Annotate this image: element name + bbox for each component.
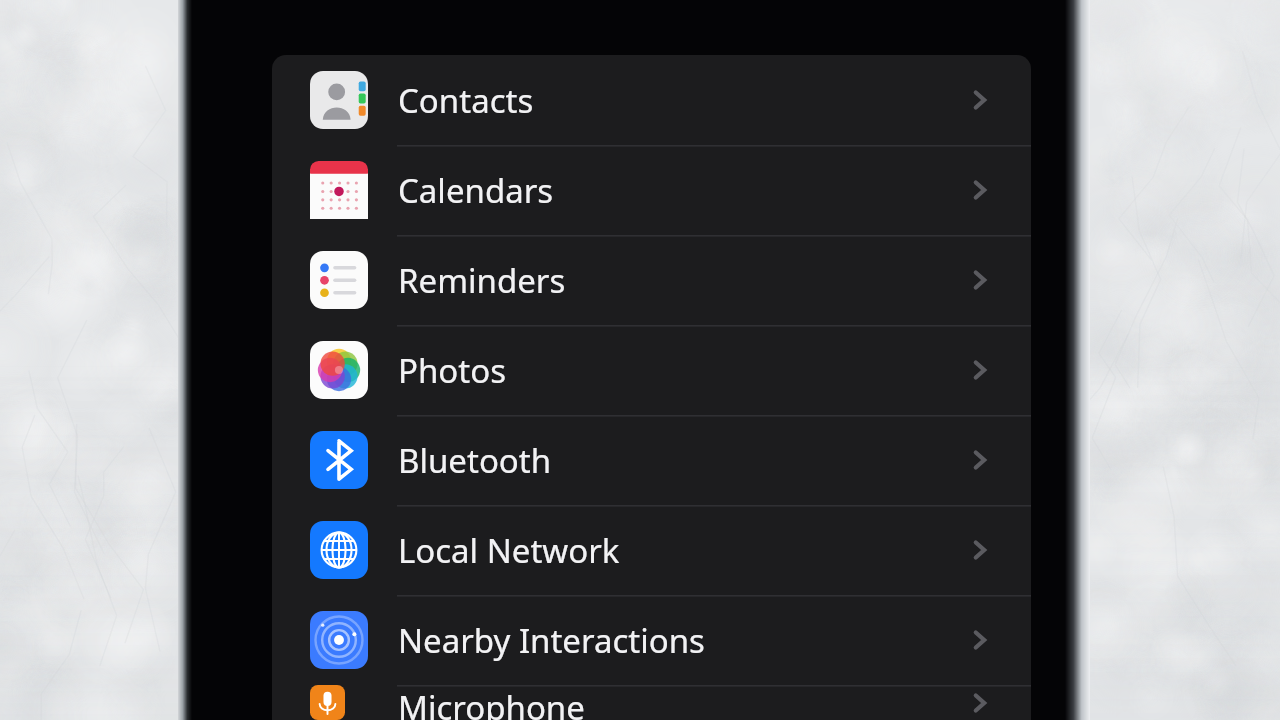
- button[interactable]: Reminders: [272, 235, 1031, 325]
- button[interactable]: Calendars: [272, 145, 1031, 235]
- other: Open Local Network: [965, 535, 995, 565]
- other: Open Photos: [965, 355, 995, 385]
- button[interactable]: Contacts: [272, 55, 1031, 145]
- staticText: Nearby Interactions: [398, 618, 705, 663]
- button[interactable]: Bluetooth: [272, 415, 1031, 505]
- staticText: Bluetooth: [398, 438, 552, 483]
- other: Open Contacts: [965, 85, 995, 115]
- other: Open Calendars: [965, 175, 995, 205]
- button[interactable]: Photos: [272, 325, 1031, 415]
- other: Open Nearby Interactions: [965, 625, 995, 655]
- other: Open Reminders: [965, 265, 995, 295]
- staticText: Reminders: [398, 258, 566, 303]
- staticText: Photos: [398, 348, 507, 393]
- button[interactable]: Local Network: [272, 505, 1031, 595]
- staticText: Contacts: [398, 78, 534, 123]
- button[interactable]: Nearby Interactions: [272, 595, 1031, 685]
- button[interactable]: Microphone: [272, 685, 1031, 720]
- other: Open Microphone: [965, 688, 995, 718]
- other: Open Bluetooth: [965, 445, 995, 475]
- staticText: Calendars: [398, 168, 554, 213]
- staticText: Microphone: [398, 685, 585, 720]
- staticText: Local Network: [398, 528, 620, 573]
